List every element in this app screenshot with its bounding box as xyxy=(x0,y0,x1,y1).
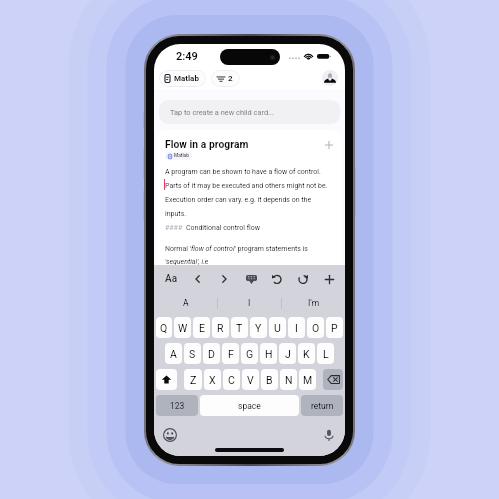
staticText: P xyxy=(331,322,338,334)
button[interactable]: R xyxy=(212,317,229,338)
staticText: G xyxy=(246,348,254,360)
button[interactable]: Aa xyxy=(162,269,180,289)
staticText: #### xyxy=(165,224,183,232)
staticText: 2:49 xyxy=(176,50,198,63)
staticText: I xyxy=(295,322,298,334)
staticText: K xyxy=(303,348,310,360)
button[interactable]: Shift xyxy=(156,369,177,390)
button[interactable]: V xyxy=(242,369,259,390)
staticText: A program can be shown to have a flow of… xyxy=(165,168,328,218)
staticText: M xyxy=(303,374,313,386)
button[interactable]: T xyxy=(231,317,248,338)
staticText: Flow in a program xyxy=(165,138,249,150)
button[interactable]: Undo xyxy=(269,271,285,287)
staticText: J xyxy=(285,348,291,360)
staticText: return xyxy=(311,401,334,411)
button[interactable]: G xyxy=(241,343,258,364)
staticText: V xyxy=(247,374,254,386)
staticText: Tap to create a new child card... xyxy=(170,108,274,117)
staticText: Aa xyxy=(165,273,178,285)
staticText: Matlab xyxy=(174,153,189,159)
button[interactable]: Add child card xyxy=(323,139,334,150)
button[interactable]: C xyxy=(223,369,240,390)
staticText: H xyxy=(265,348,273,360)
staticText: A xyxy=(170,348,177,360)
staticText: I'm xyxy=(308,298,320,308)
button[interactable]: F xyxy=(222,343,239,364)
button[interactable]: Emoji xyxy=(163,428,177,442)
button[interactable]: S xyxy=(184,343,201,364)
staticText: Y xyxy=(255,322,262,334)
staticText: W xyxy=(178,322,188,334)
button[interactable]: Y xyxy=(250,317,267,338)
button[interactable]: P xyxy=(326,317,343,338)
button[interactable]: L xyxy=(317,343,334,364)
staticText: Q xyxy=(160,322,168,334)
staticText: Conditional control flow xyxy=(186,224,260,232)
staticText: I xyxy=(248,298,251,308)
staticText: Z xyxy=(190,374,197,386)
button[interactable]: E xyxy=(193,317,210,338)
button[interactable]: Dictate xyxy=(322,428,336,442)
staticText: N xyxy=(285,374,293,386)
button[interactable]: M xyxy=(299,369,316,390)
button[interactable]: Matlab xyxy=(159,70,206,87)
button[interactable]: return xyxy=(301,395,343,416)
button[interactable]: X xyxy=(204,369,221,390)
button[interactable]: K xyxy=(298,343,315,364)
button[interactable]: N xyxy=(280,369,297,390)
staticText: Normal 'flow of control' program stateme… xyxy=(165,245,308,265)
staticText: S xyxy=(189,348,196,360)
button[interactable]: Tap to create a new child card... xyxy=(159,100,340,124)
button[interactable]: I xyxy=(218,292,281,314)
button[interactable]: I'm xyxy=(282,292,345,314)
staticText: F xyxy=(228,348,234,360)
staticText: X xyxy=(209,374,216,386)
button[interactable]: Redo xyxy=(295,271,311,287)
button[interactable]: 2 xyxy=(211,70,240,87)
button[interactable]: B xyxy=(261,369,278,390)
staticText: L xyxy=(323,348,329,360)
staticText: R xyxy=(217,322,224,334)
button[interactable]: U xyxy=(269,317,286,338)
button[interactable]: H xyxy=(260,343,277,364)
button[interactable]: Q xyxy=(156,317,172,338)
staticText: B xyxy=(266,374,273,386)
staticText: E xyxy=(199,322,205,334)
button[interactable]: A xyxy=(165,343,182,364)
staticText: U xyxy=(274,322,281,334)
button[interactable]: J xyxy=(279,343,296,364)
button[interactable]: space xyxy=(200,395,299,416)
button[interactable]: O xyxy=(307,317,324,338)
staticText: 123 xyxy=(170,401,185,411)
staticText: T xyxy=(236,322,243,334)
staticText: A xyxy=(183,298,189,308)
button[interactable]: Hide keyboard xyxy=(243,271,259,287)
staticText: D xyxy=(208,348,215,360)
button[interactable]: I xyxy=(288,317,305,338)
button[interactable]: W xyxy=(174,317,191,338)
button[interactable]: Backspace xyxy=(323,369,343,390)
button[interactable]: Profile xyxy=(322,70,338,86)
button[interactable]: 123 xyxy=(156,395,198,416)
staticText: O xyxy=(312,322,320,334)
staticText: C xyxy=(228,374,235,386)
button[interactable]: Add xyxy=(321,271,337,287)
button[interactable]: Z xyxy=(184,369,202,390)
button[interactable]: A xyxy=(154,292,217,314)
button[interactable]: Next xyxy=(216,271,232,287)
staticText: space xyxy=(238,401,261,411)
button[interactable]: D xyxy=(203,343,220,364)
staticText: Matlab xyxy=(174,74,199,83)
staticText: 2 xyxy=(228,74,233,83)
button[interactable]: Previous xyxy=(190,271,206,287)
